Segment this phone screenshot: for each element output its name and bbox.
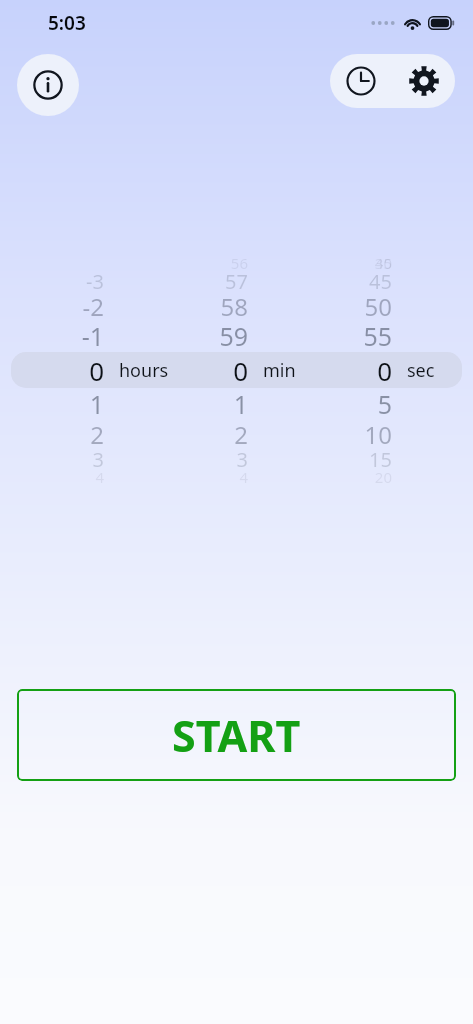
staticText: -1	[81, 319, 104, 353]
button[interactable]	[11, 352, 462, 388]
staticText: 2	[234, 418, 248, 451]
staticText: 4	[95, 467, 104, 487]
staticText: 56	[230, 253, 248, 273]
staticText: 58	[220, 290, 248, 323]
staticText: 1	[233, 387, 248, 421]
button[interactable]: Timer history	[330, 54, 392, 108]
staticText: 15	[369, 446, 392, 473]
staticText: 20	[374, 467, 392, 487]
staticText: 4	[239, 467, 248, 487]
staticText: 2	[90, 418, 104, 451]
staticText: -3	[86, 268, 104, 295]
staticText: 40	[374, 253, 392, 273]
staticText: 0	[377, 353, 392, 387]
staticText: hours	[119, 358, 169, 383]
button[interactable]: Info	[17, 54, 79, 116]
staticText: 1	[89, 387, 104, 421]
staticText: 57	[225, 268, 248, 295]
staticText: 0	[89, 353, 104, 387]
staticText: 10	[364, 418, 392, 451]
staticText: min	[263, 358, 296, 383]
staticText: 55	[363, 319, 392, 353]
staticText: 35	[374, 253, 392, 273]
staticText: 0	[233, 353, 248, 387]
staticText: 3	[92, 446, 104, 473]
staticText: 3	[236, 446, 248, 473]
staticText: START	[172, 706, 301, 765]
staticText: 59	[219, 319, 248, 353]
staticText: -2	[82, 290, 104, 323]
staticText: 45	[369, 268, 392, 295]
button[interactable]: START	[17, 689, 456, 781]
staticText: 5:03	[48, 10, 86, 36]
staticText: 5	[377, 387, 392, 421]
staticText: sec	[407, 358, 435, 383]
button[interactable]: Settings	[392, 54, 455, 108]
staticText: 50	[364, 290, 392, 323]
